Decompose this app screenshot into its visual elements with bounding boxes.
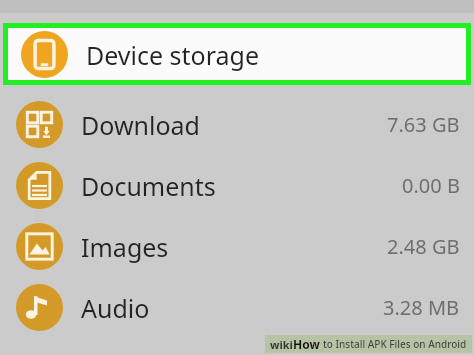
staticText: Audio <box>81 291 383 325</box>
staticText: Download <box>81 108 387 142</box>
staticText: How <box>293 336 320 352</box>
button[interactable]: Device storage <box>8 28 466 80</box>
button[interactable]: Documents <box>0 155 474 216</box>
staticText: 3.28 MB <box>383 294 460 321</box>
staticText: to Install APK Files on Android <box>323 337 467 351</box>
staticText: 2.48 GB <box>387 233 460 260</box>
button[interactable]: Download <box>0 94 474 155</box>
staticText: Device storage <box>86 38 260 72</box>
staticText: wiki <box>270 337 293 352</box>
staticText: Images <box>81 230 387 264</box>
staticText: 0.00 B <box>402 172 460 199</box>
staticText: Documents <box>81 169 402 203</box>
staticText: 7.63 GB <box>387 111 460 138</box>
button[interactable]: Audio <box>0 277 474 338</box>
button[interactable]: Images <box>0 216 474 277</box>
